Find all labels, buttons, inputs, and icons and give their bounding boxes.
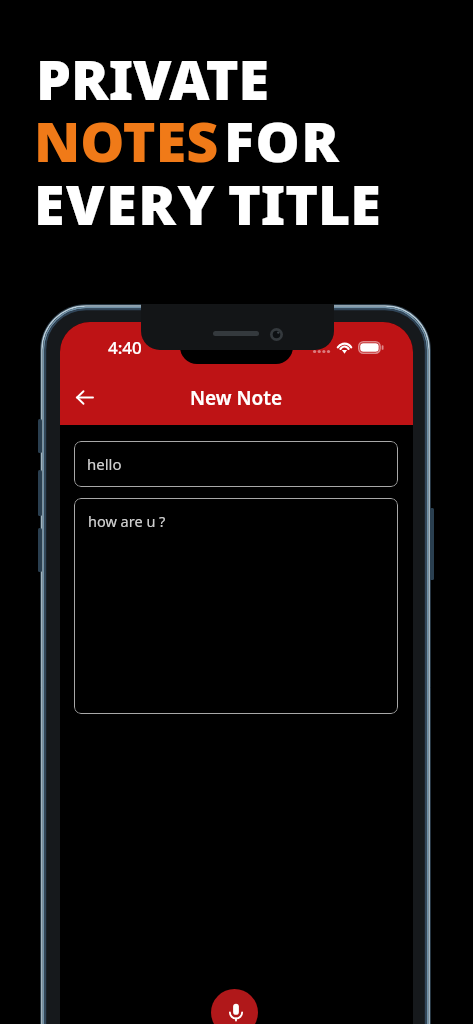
staticText: TITLE bbox=[228, 166, 381, 242]
staticText: 4:40 bbox=[108, 336, 142, 359]
staticText: PRIVATE bbox=[36, 41, 270, 117]
staticText: how are u ? bbox=[88, 511, 166, 531]
button[interactable]: hello bbox=[74, 441, 398, 487]
staticText: hello bbox=[87, 454, 122, 474]
button[interactable]: Back bbox=[64, 377, 104, 417]
button[interactable]: Record voice note bbox=[211, 989, 258, 1024]
button[interactable]: how are u ? bbox=[74, 498, 398, 714]
staticText: FOR bbox=[224, 103, 341, 179]
staticText: EVERY bbox=[34, 166, 216, 242]
staticText: New Note bbox=[190, 385, 283, 411]
staticText: NOTES bbox=[34, 103, 219, 179]
